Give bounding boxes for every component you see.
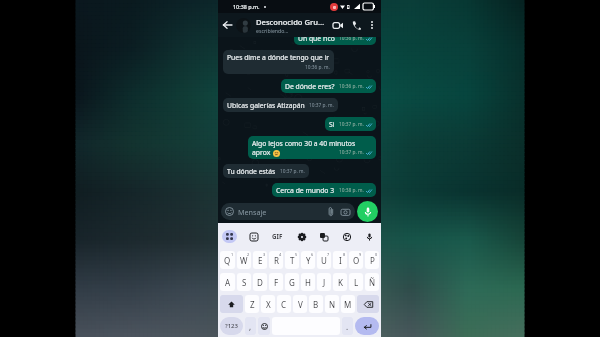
button[interactable]: O (349, 251, 363, 269)
button[interactable]: Shift (220, 295, 243, 313)
button[interactable]: Ubicas galerías Atizapán (223, 98, 338, 112)
button[interactable]: Backspace (357, 295, 379, 313)
staticText: W (240, 255, 248, 266)
staticText: 5 (295, 252, 298, 257)
staticText: , (249, 321, 252, 332)
button[interactable]: Algo lejos como 30 a 40 minutos (248, 136, 376, 159)
staticText: C (281, 299, 287, 310)
staticText: Desconocido Gru… (256, 17, 325, 27)
button[interactable]: Z (245, 295, 259, 313)
staticText: . (346, 321, 349, 332)
button[interactable]: , (245, 317, 256, 335)
staticText: E (258, 255, 263, 266)
staticText: I (339, 255, 342, 266)
staticText: N (329, 299, 336, 310)
button[interactable]: U (317, 251, 331, 269)
staticText: F (274, 277, 279, 288)
staticText: R (274, 255, 279, 266)
button[interactable]: T (285, 251, 299, 269)
button[interactable]: X (261, 295, 275, 313)
staticText: A (225, 277, 231, 288)
button[interactable]: More options (367, 20, 377, 30)
staticText: X (266, 299, 271, 310)
other: Camera (341, 208, 350, 216)
button[interactable]: Emoji (221, 203, 355, 220)
other: Attach (328, 207, 334, 216)
button[interactable]: Emoji (258, 317, 270, 335)
button[interactable]: L (349, 273, 363, 291)
staticText: escribiendo… (256, 27, 289, 34)
button[interactable]: V (293, 295, 307, 313)
button[interactable]: Tu dónde estás (223, 164, 309, 178)
staticText: De dónde eres? (285, 82, 335, 91)
staticText: Algo lejos como 30 a 40 minutos (252, 139, 356, 148)
staticText: e (333, 4, 336, 11)
button[interactable]: Ñ (365, 273, 379, 291)
staticText: K (338, 277, 343, 288)
button[interactable]: P (365, 251, 379, 269)
button[interactable]: Keyboard tools (222, 230, 237, 243)
button[interactable]: M (341, 295, 355, 313)
button[interactable]: Enter (355, 317, 379, 335)
staticText: Pues dime a dónde tengo que ir (227, 53, 330, 62)
button[interactable]: B (309, 295, 323, 313)
button[interactable]: F (269, 273, 283, 291)
button[interactable]: Translate (317, 230, 330, 243)
button[interactable]: G (285, 273, 299, 291)
staticText: H (305, 277, 311, 288)
button[interactable]: Voice message (357, 201, 378, 222)
staticText: 6 (311, 252, 314, 257)
button[interactable]: Cerca de mundo 3 (272, 183, 376, 197)
button[interactable]: Call (350, 19, 362, 31)
button[interactable]: Stickers (247, 230, 260, 243)
staticText: Z (250, 299, 255, 310)
button[interactable]: Uh que rico (294, 31, 376, 45)
button[interactable]: Settings (295, 230, 308, 243)
staticText: Si (329, 120, 335, 129)
button[interactable]: ?123 (220, 317, 243, 335)
button[interactable]: Si (325, 117, 376, 131)
button[interactable]: GIF (270, 230, 285, 242)
staticText: 10:37 p. m. (339, 121, 364, 128)
button[interactable]: S (237, 273, 251, 291)
button[interactable]: H (301, 273, 315, 291)
staticText: Mensaje (238, 207, 267, 217)
button[interactable]: Voice input (363, 230, 376, 243)
staticText: M (344, 299, 352, 310)
staticText: Uh que rico (298, 34, 335, 43)
staticText: T (290, 255, 295, 266)
button[interactable]: C (277, 295, 291, 313)
button[interactable]: W (237, 251, 251, 269)
staticText: Tu dónde estás (227, 167, 276, 176)
button[interactable]: N (325, 295, 339, 313)
button[interactable]: De dónde eres? (281, 79, 376, 93)
staticText: P (370, 255, 375, 266)
button[interactable]: R (269, 251, 283, 269)
button[interactable]: . (342, 317, 353, 335)
staticText: O (353, 255, 360, 266)
button[interactable]: I (333, 251, 347, 269)
button[interactable]: Y (301, 251, 315, 269)
button[interactable]: Theme (340, 230, 353, 243)
staticText: 0 (375, 252, 378, 257)
button[interactable]: Pues dime a dónde tengo que ir (223, 50, 334, 74)
staticText: 10:36 p. m. (339, 83, 364, 90)
staticText: Ñ (369, 277, 376, 288)
button[interactable]: K (333, 273, 347, 291)
button[interactable]: Back (220, 18, 234, 32)
button[interactable]: Video call (332, 19, 344, 31)
staticText: 10:38 p. m. (339, 187, 364, 194)
staticText: 1 (231, 252, 234, 257)
button[interactable]: Q (220, 251, 235, 269)
other: Emoji (225, 207, 234, 216)
staticText: V (298, 299, 303, 310)
staticText: Y (306, 255, 311, 266)
button[interactable]: J (317, 273, 331, 291)
staticText: U (321, 255, 327, 266)
staticText: 10:37 p. m. (280, 168, 305, 175)
button[interactable]: A (220, 273, 235, 291)
button[interactable]: D (253, 273, 267, 291)
button[interactable]: E (253, 251, 267, 269)
staticText: 10:37 p. m. (309, 102, 334, 109)
